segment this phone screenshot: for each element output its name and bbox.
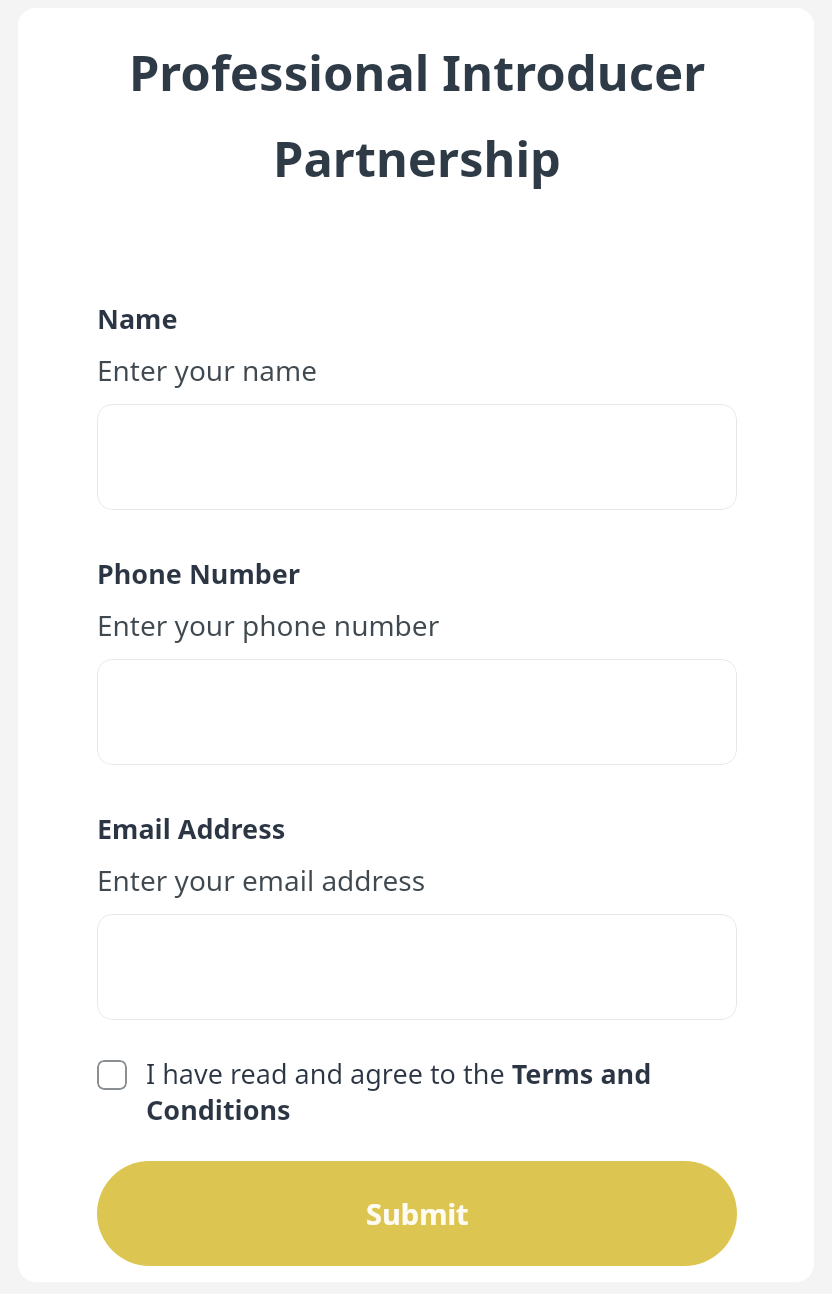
staticText: Name <box>97 300 178 337</box>
button[interactable] <box>97 659 737 765</box>
button[interactable] <box>97 914 737 1020</box>
staticText: Enter your name <box>97 351 317 389</box>
staticText: Email Address <box>97 810 286 847</box>
staticText: Enter your phone number <box>97 606 440 644</box>
button[interactable] <box>97 404 737 510</box>
staticText: Submit <box>366 1194 469 1233</box>
staticText: I have read and agree to the Terms and C… <box>146 1055 737 1128</box>
staticText: Phone Number <box>97 555 300 592</box>
staticText: Professional Introducer Partnership <box>97 39 737 192</box>
staticText: Enter your email address <box>97 861 426 899</box>
button[interactable]: Accept terms and conditions <box>97 1055 737 1128</box>
other: Accept terms and conditions <box>97 1060 127 1090</box>
button[interactable]: Submit <box>97 1161 737 1266</box>
